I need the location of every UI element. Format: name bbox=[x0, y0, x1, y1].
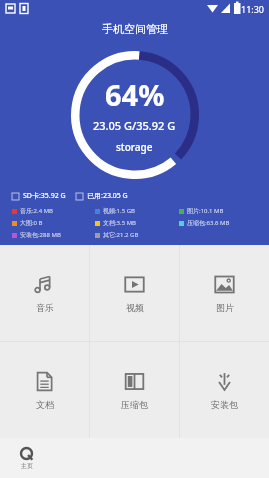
staticText: 安装包 bbox=[211, 399, 238, 410]
staticText: 视频:1.5 GB bbox=[103, 207, 135, 215]
staticText: 其它:21.2 GB bbox=[103, 231, 139, 239]
button[interactable]: 视频 bbox=[90, 245, 179, 341]
button[interactable]: 压缩包 bbox=[90, 342, 179, 438]
staticText: 音乐:2.4 MB bbox=[20, 207, 53, 215]
staticText: 文档 bbox=[36, 399, 54, 410]
button[interactable]: 文档 bbox=[0, 342, 89, 438]
staticText: 安装包:288 MB bbox=[20, 231, 61, 239]
button[interactable]: 安装包 bbox=[180, 342, 269, 438]
staticText: 64% bbox=[105, 75, 165, 114]
staticText: 视频 bbox=[126, 302, 144, 313]
staticText: 大图:0 B bbox=[20, 219, 43, 227]
staticText: 23.05 G/35.92 G bbox=[93, 118, 176, 133]
staticText: 压缩包 bbox=[121, 399, 148, 410]
staticText: 压缩包:63.6 MB bbox=[187, 219, 230, 227]
staticText: 文档:3.5 MB bbox=[103, 219, 136, 227]
staticText: 已用:23.05 G bbox=[87, 191, 128, 201]
button[interactable]: 音乐 bbox=[0, 245, 89, 341]
staticText: 音乐 bbox=[36, 302, 54, 313]
staticText: storage bbox=[116, 140, 153, 154]
button[interactable]: 主页 Home bbox=[16, 443, 37, 474]
staticText: 手机空间管理 bbox=[102, 22, 168, 36]
staticText: 11:30 bbox=[241, 3, 265, 15]
staticText: 图片:10.1 MB bbox=[187, 207, 224, 215]
staticText: 主页 bbox=[21, 462, 33, 470]
button[interactable]: 图片 bbox=[180, 245, 269, 341]
staticText: SD卡:35.92 G bbox=[23, 191, 66, 201]
staticText: 图片 bbox=[216, 302, 234, 313]
